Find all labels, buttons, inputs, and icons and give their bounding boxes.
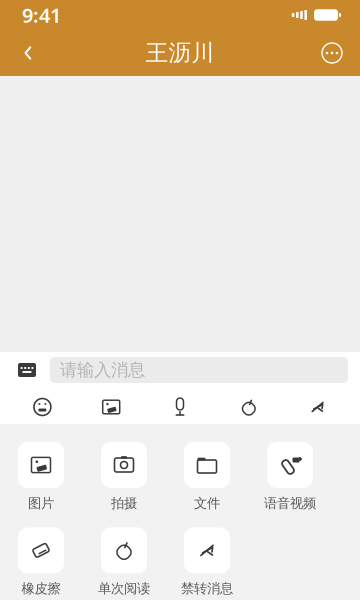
button[interactable]: 图片 xyxy=(77,390,146,424)
button[interactable]: 拍摄 xyxy=(89,442,159,511)
button[interactable]: 语音视频 xyxy=(255,442,325,511)
button[interactable]: 表情 xyxy=(8,390,77,424)
staticText: 图片 xyxy=(28,495,54,511)
staticText: 单次阅读 xyxy=(98,580,150,597)
button[interactable]: 返回 xyxy=(8,31,48,75)
button[interactable]: 键盘 xyxy=(14,357,40,383)
staticText: 禁转消息 xyxy=(181,580,233,597)
staticText: 橡皮擦 xyxy=(21,580,60,597)
staticText: 请输入消息 xyxy=(60,359,145,381)
button[interactable]: 图片 xyxy=(6,442,76,511)
button[interactable]: 请输入消息 xyxy=(50,357,348,383)
button[interactable]: 语音 xyxy=(146,390,214,424)
button[interactable]: 单次阅读 xyxy=(89,527,159,597)
staticText: 9:41 xyxy=(22,2,61,28)
staticText: 文件 xyxy=(194,495,220,511)
button[interactable]: 禁止转发 xyxy=(283,390,352,424)
staticText: 语音视频 xyxy=(264,495,316,511)
button[interactable]: 阅后即焚 xyxy=(214,390,283,424)
button[interactable]: 更多 xyxy=(312,31,352,75)
staticText: 王沥川 xyxy=(145,39,214,67)
button[interactable]: 禁转消息 xyxy=(172,527,242,597)
button[interactable]: 橡皮擦 xyxy=(6,527,76,597)
staticText: 拍摄 xyxy=(111,495,137,511)
button[interactable]: 文件 xyxy=(172,442,242,511)
